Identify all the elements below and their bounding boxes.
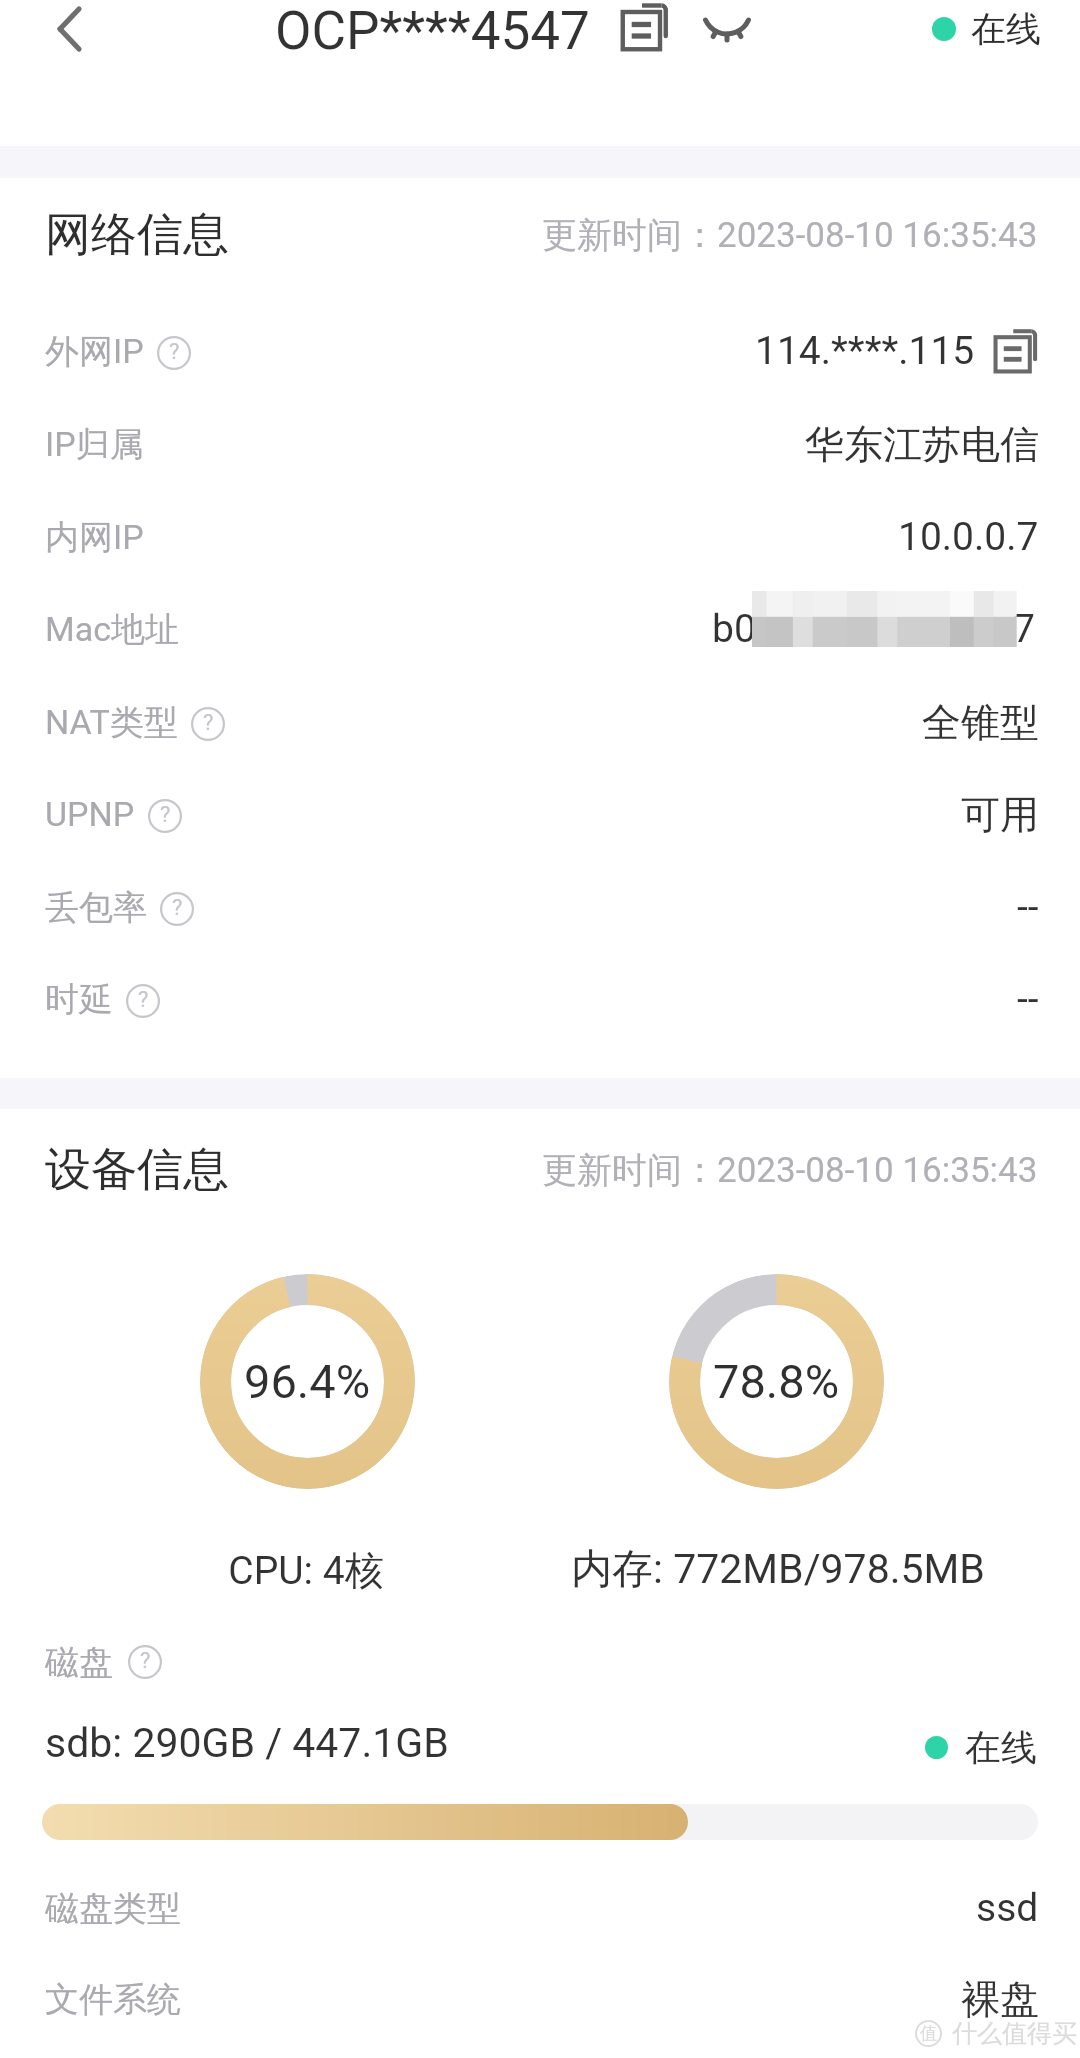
staticText: 96.4% [244, 1354, 371, 1409]
button[interactable]: 内网IP [0, 492, 1080, 582]
staticText: ssd [976, 1885, 1039, 1931]
staticText: 什么值得买 [952, 2018, 1077, 2049]
staticText: NAT类型 [45, 701, 178, 744]
staticText: 114.****.115 [755, 328, 975, 374]
staticText: 时延 [45, 978, 113, 1021]
button[interactable]: sdb: 290GB / 447.1GB [45, 1703, 565, 1783]
staticText: IP归属 [45, 423, 144, 466]
button[interactable]: 丢包率 [0, 862, 1080, 952]
staticText: sdb: 290GB / 447.1GB [45, 1719, 449, 1767]
staticText: CPU: 4核 [228, 1546, 384, 1595]
staticText: 值 [920, 2023, 937, 2044]
staticText: ? [160, 802, 171, 828]
staticText: 7 [1013, 606, 1035, 652]
button[interactable]: 文件系统 [0, 1954, 1080, 2044]
staticText: ? [138, 987, 149, 1013]
button[interactable]: Disk online [925, 1719, 1045, 1775]
button[interactable]: 磁盘类型 [0, 1863, 1080, 1953]
button[interactable]: NAT类型 [0, 677, 1080, 767]
staticText: ? [169, 339, 180, 365]
button[interactable]: Online status [932, 0, 1052, 58]
staticText: -- [1017, 976, 1039, 1022]
button[interactable]: UPNP [0, 769, 1080, 859]
button[interactable]: Copy device id [615, 0, 675, 56]
button[interactable]: Mac地址 [0, 584, 1080, 674]
staticText: 设备信息 [45, 1141, 229, 1199]
button[interactable]: 时延 [0, 954, 1080, 1044]
staticText: 78.8% [713, 1354, 840, 1409]
staticText: 可用 [961, 790, 1039, 839]
button[interactable]: IP归属 [0, 399, 1080, 489]
staticText: 全锥型 [922, 698, 1039, 747]
staticText: -- [1017, 884, 1039, 930]
staticText: UPNP [45, 794, 135, 834]
button[interactable]: 外网IP [0, 306, 1080, 396]
staticText: 裸盘 [961, 1975, 1039, 2024]
button[interactable]: Toggle visibility [694, 0, 760, 47]
staticText: 在线 [965, 1725, 1037, 1770]
staticText: ? [140, 1648, 151, 1674]
button[interactable]: Usage 96.4% [200, 1274, 415, 1489]
staticText: 更新时间：2023-08-10 16:35:43 [542, 1148, 1038, 1192]
staticText: 磁盘类型 [45, 1887, 181, 1930]
staticText: b0: [712, 606, 766, 652]
staticText: 外网IP [45, 330, 144, 373]
staticText: OCP****4547 [275, 0, 590, 58]
staticText: 磁盘 [45, 1641, 113, 1684]
button[interactable]: Back [24, 1, 114, 57]
staticText: 更新时间：2023-08-10 16:35:43 [542, 213, 1038, 257]
staticText: 内存: 772MB/978.5MB [571, 1544, 985, 1596]
staticText: 10.0.0.7 [898, 514, 1039, 560]
button[interactable]: Usage 78.8% [669, 1274, 884, 1489]
staticText: ? [203, 710, 214, 736]
staticText: ? [172, 895, 183, 921]
staticText: 在线 [971, 7, 1041, 51]
staticText: Mac地址 [45, 608, 179, 651]
staticText: 华东江苏电信 [805, 420, 1039, 469]
staticText: 网络信息 [45, 206, 229, 264]
staticText: 丢包率 [45, 886, 147, 929]
staticText: 内网IP [45, 516, 144, 559]
staticText: 文件系统 [45, 1978, 181, 2021]
